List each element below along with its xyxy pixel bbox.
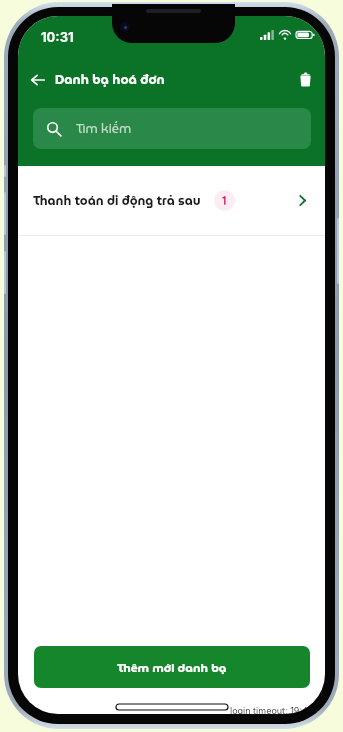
button[interactable]: Back <box>25 67 51 93</box>
button[interactable]: Thanh toán di động trả sau <box>18 166 325 235</box>
staticText: Danh bạ hoá đơn <box>55 69 165 90</box>
staticText: Thanh toán di động trả sau <box>33 191 201 211</box>
staticText: 1 <box>222 193 227 208</box>
button[interactable]: Tìm kiếm <box>33 108 311 149</box>
staticText: Thêm mới danh bạ <box>117 658 227 677</box>
button[interactable]: Delete <box>292 66 318 92</box>
button[interactable]: Thêm mới danh bạ <box>34 646 310 688</box>
staticText: 10:31 <box>41 29 74 45</box>
staticText: Tìm kiếm <box>76 119 132 139</box>
staticText: login timeout: 19:46 <box>230 705 314 714</box>
